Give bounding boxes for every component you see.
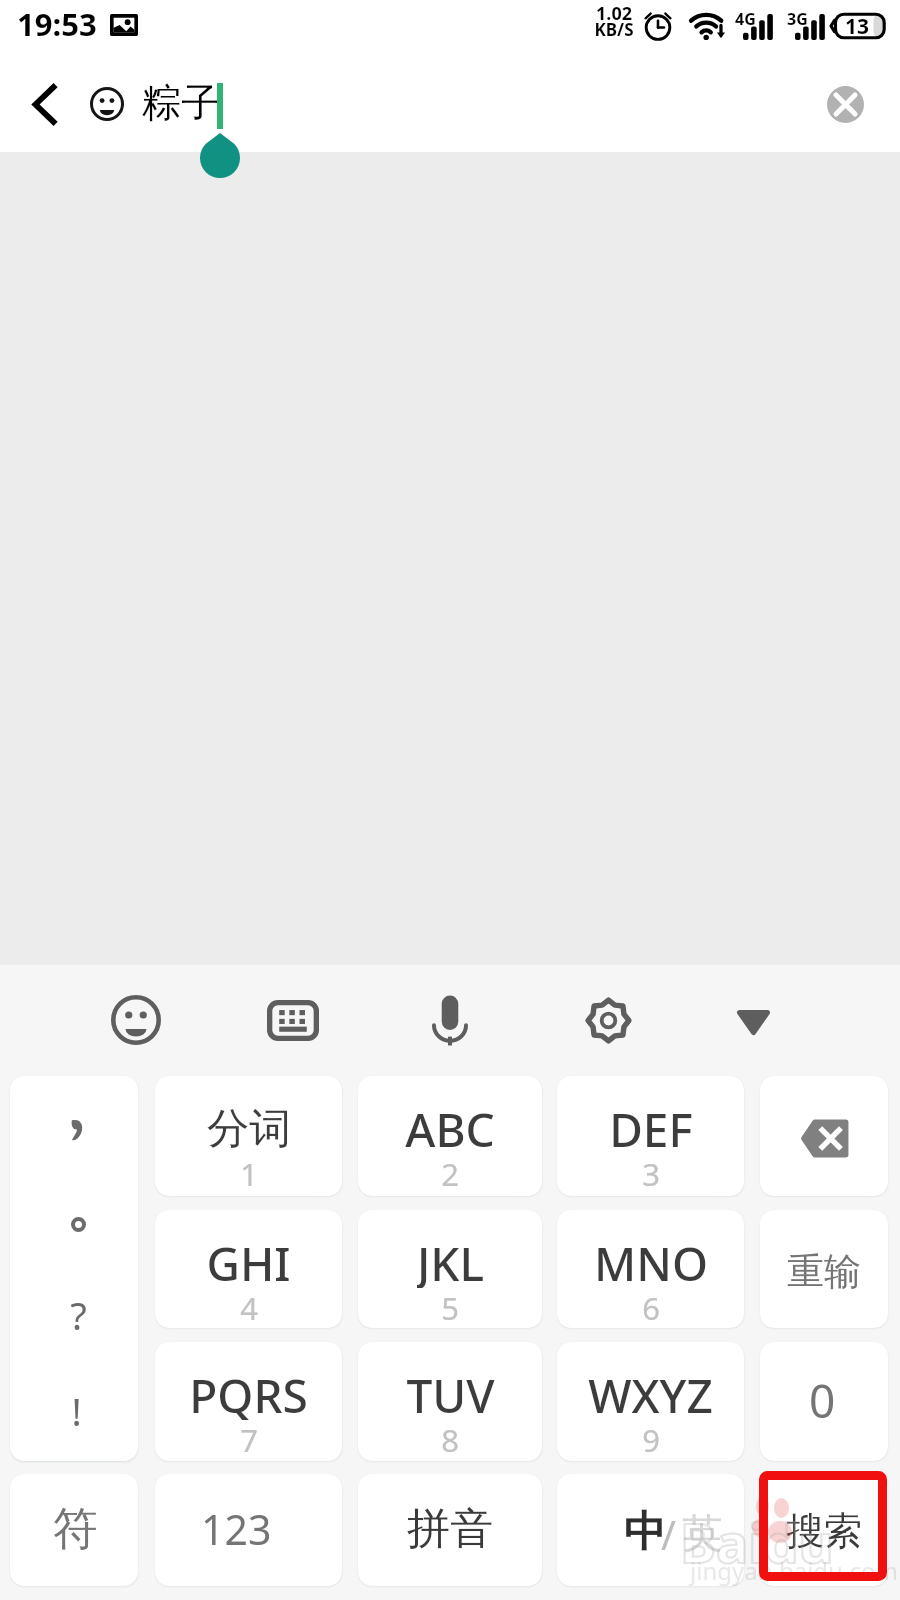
button[interactable]: 分词: [155, 1076, 342, 1196]
staticText: 2: [441, 1153, 459, 1191]
staticText: DEF: [609, 1098, 693, 1154]
staticText: PQRS: [189, 1364, 308, 1420]
button[interactable]: Hide keyboard: [725, 994, 781, 1050]
button[interactable]: Punctuation: [10, 1076, 138, 1461]
staticText: 1.02: [584, 1, 644, 23]
staticText: GHI: [206, 1232, 291, 1288]
button[interactable]: 符: [10, 1474, 138, 1586]
button[interactable]: ABC: [358, 1076, 542, 1196]
staticText: 8: [441, 1419, 459, 1457]
button[interactable]: 拼音: [358, 1474, 542, 1586]
staticText: WXYZ: [588, 1364, 713, 1420]
button[interactable]: Back: [16, 76, 72, 132]
button[interactable]: Backspace: [760, 1076, 888, 1196]
button[interactable]: DEF: [557, 1076, 744, 1196]
staticText: 3: [642, 1153, 660, 1191]
staticText: 0: [809, 1369, 836, 1432]
staticText: JKL: [417, 1232, 484, 1288]
button[interactable]: PQRS: [155, 1342, 342, 1461]
button[interactable]: Emoji: [78, 75, 136, 133]
button[interactable]: Voice input: [422, 992, 478, 1048]
staticText: 123: [201, 1501, 272, 1557]
button[interactable]: GHI: [155, 1210, 342, 1328]
staticText: 英: [682, 1508, 722, 1558]
staticText: 6: [642, 1287, 660, 1325]
button[interactable]: Settings: [580, 992, 636, 1048]
staticText: !: [71, 1385, 82, 1437]
staticText: 4: [240, 1287, 258, 1325]
staticText: 拼音: [407, 1502, 493, 1556]
staticText: ABC: [405, 1098, 495, 1154]
button[interactable]: Emoji: [108, 992, 164, 1048]
staticText: KB/S: [584, 18, 644, 40]
staticText: 粽子: [142, 78, 220, 127]
button[interactable]: Clear text: [816, 75, 874, 133]
staticText: 1: [240, 1153, 258, 1191]
staticText: Baidu: [680, 1505, 834, 1579]
button[interactable]: TUV: [358, 1342, 542, 1461]
staticText: 7: [240, 1419, 258, 1457]
staticText: 分词: [207, 1103, 291, 1156]
button[interactable]: 中: [557, 1474, 744, 1586]
staticText: jingyan.baidu.com: [690, 1554, 898, 1587]
staticText: 5: [441, 1287, 459, 1325]
staticText: 4G: [735, 8, 756, 30]
button[interactable]: 重输: [760, 1210, 888, 1328]
staticText: 9: [642, 1419, 660, 1457]
staticText: 重输: [787, 1248, 861, 1295]
button[interactable]: MNO: [557, 1210, 744, 1328]
button[interactable]: WXYZ: [557, 1342, 744, 1461]
staticText: /: [661, 1507, 676, 1561]
button[interactable]: 搜索: [760, 1474, 888, 1586]
button[interactable]: JKL: [358, 1210, 542, 1328]
button[interactable]: Switch keyboard: [265, 992, 321, 1048]
staticText: 符: [53, 1501, 98, 1558]
staticText: 搜索: [786, 1507, 862, 1555]
staticText: ?: [70, 1289, 87, 1341]
staticText: MNO: [594, 1232, 708, 1288]
button[interactable]: 123: [155, 1474, 342, 1586]
staticText: 13: [845, 12, 870, 40]
staticText: 19:53: [17, 3, 97, 45]
staticText: TUV: [406, 1364, 495, 1420]
button[interactable]: 0: [760, 1342, 888, 1461]
staticText: 3G: [787, 8, 808, 30]
staticText: 中: [624, 1506, 666, 1559]
